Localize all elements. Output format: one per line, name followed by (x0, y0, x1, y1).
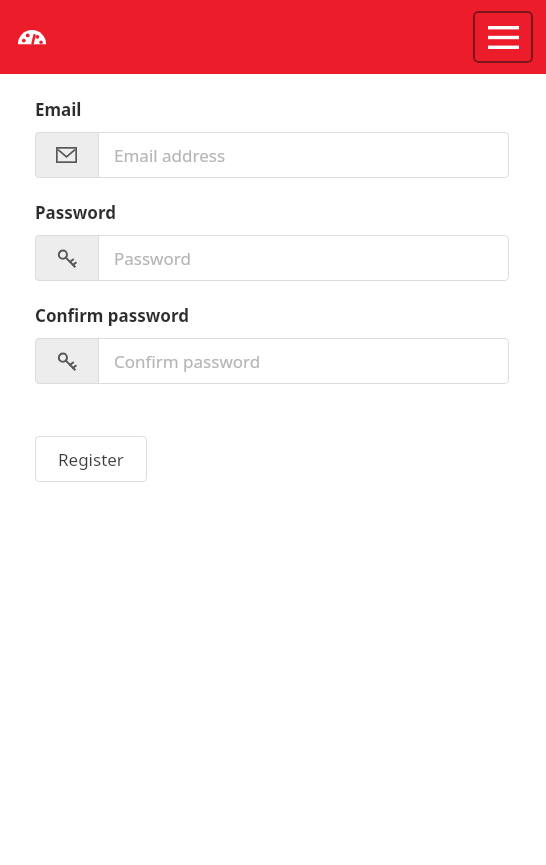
button[interactable]: Toggle navigation menu (473, 11, 533, 63)
staticText: Confirm password (114, 350, 261, 373)
button[interactable]: Confirm password (35, 338, 509, 384)
button[interactable]: Register (35, 436, 147, 482)
button[interactable]: Email address (35, 132, 509, 178)
staticText: Confirm password (35, 304, 190, 327)
button[interactable]: Password (35, 235, 509, 281)
staticText: Register (58, 448, 124, 471)
staticText: Password (114, 247, 191, 270)
staticText: Password (35, 201, 116, 224)
staticText: Email (35, 98, 82, 121)
staticText: Email address (114, 144, 226, 167)
button[interactable]: Dashboard home (14, 19, 50, 55)
